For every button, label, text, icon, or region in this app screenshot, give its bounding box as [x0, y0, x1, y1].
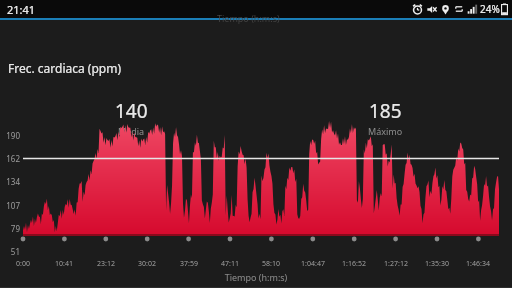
staticText: 1:04:47	[293, 259, 333, 269]
staticText: 10:41	[44, 259, 84, 269]
staticText: 190	[0, 130, 20, 141]
staticText: 0:00	[3, 259, 43, 269]
staticText: 162	[0, 153, 20, 164]
staticText: 140	[115, 98, 148, 124]
button[interactable]: 185	[345, 98, 425, 137]
other: Battery	[501, 3, 508, 15]
other: Sound off	[426, 4, 437, 15]
staticText: 185	[369, 98, 402, 124]
other: Signal	[467, 4, 478, 15]
staticText: 47:11	[210, 259, 250, 269]
button[interactable]: 140	[91, 98, 171, 137]
staticText: 23:12	[86, 259, 126, 269]
other: Alarm	[412, 4, 423, 15]
staticText: Media	[118, 125, 145, 137]
staticText: 1:16:52	[334, 259, 374, 269]
staticText: 37:59	[169, 259, 209, 269]
staticText: Tiempo (h:m:s)	[217, 12, 280, 24]
staticText: Máximo	[368, 125, 403, 137]
staticText: 24%	[480, 2, 500, 16]
staticText: 1:46:34	[458, 259, 498, 269]
staticText: 79	[0, 223, 20, 234]
staticText: 107	[0, 200, 20, 211]
staticText: 58:10	[251, 259, 291, 269]
staticText: Tiempo (h:m:s)	[0, 271, 512, 283]
other: Sync	[454, 4, 464, 14]
other: Location	[440, 4, 451, 15]
staticText: 51	[0, 246, 20, 257]
staticText: 21:41	[7, 2, 36, 17]
staticText: 30:02	[127, 259, 167, 269]
staticText: 134	[0, 176, 20, 187]
staticText: Frec. cardiaca (ppm)	[8, 60, 122, 76]
staticText: 1:35:30	[417, 259, 457, 269]
staticText: 1:27:12	[376, 259, 416, 269]
